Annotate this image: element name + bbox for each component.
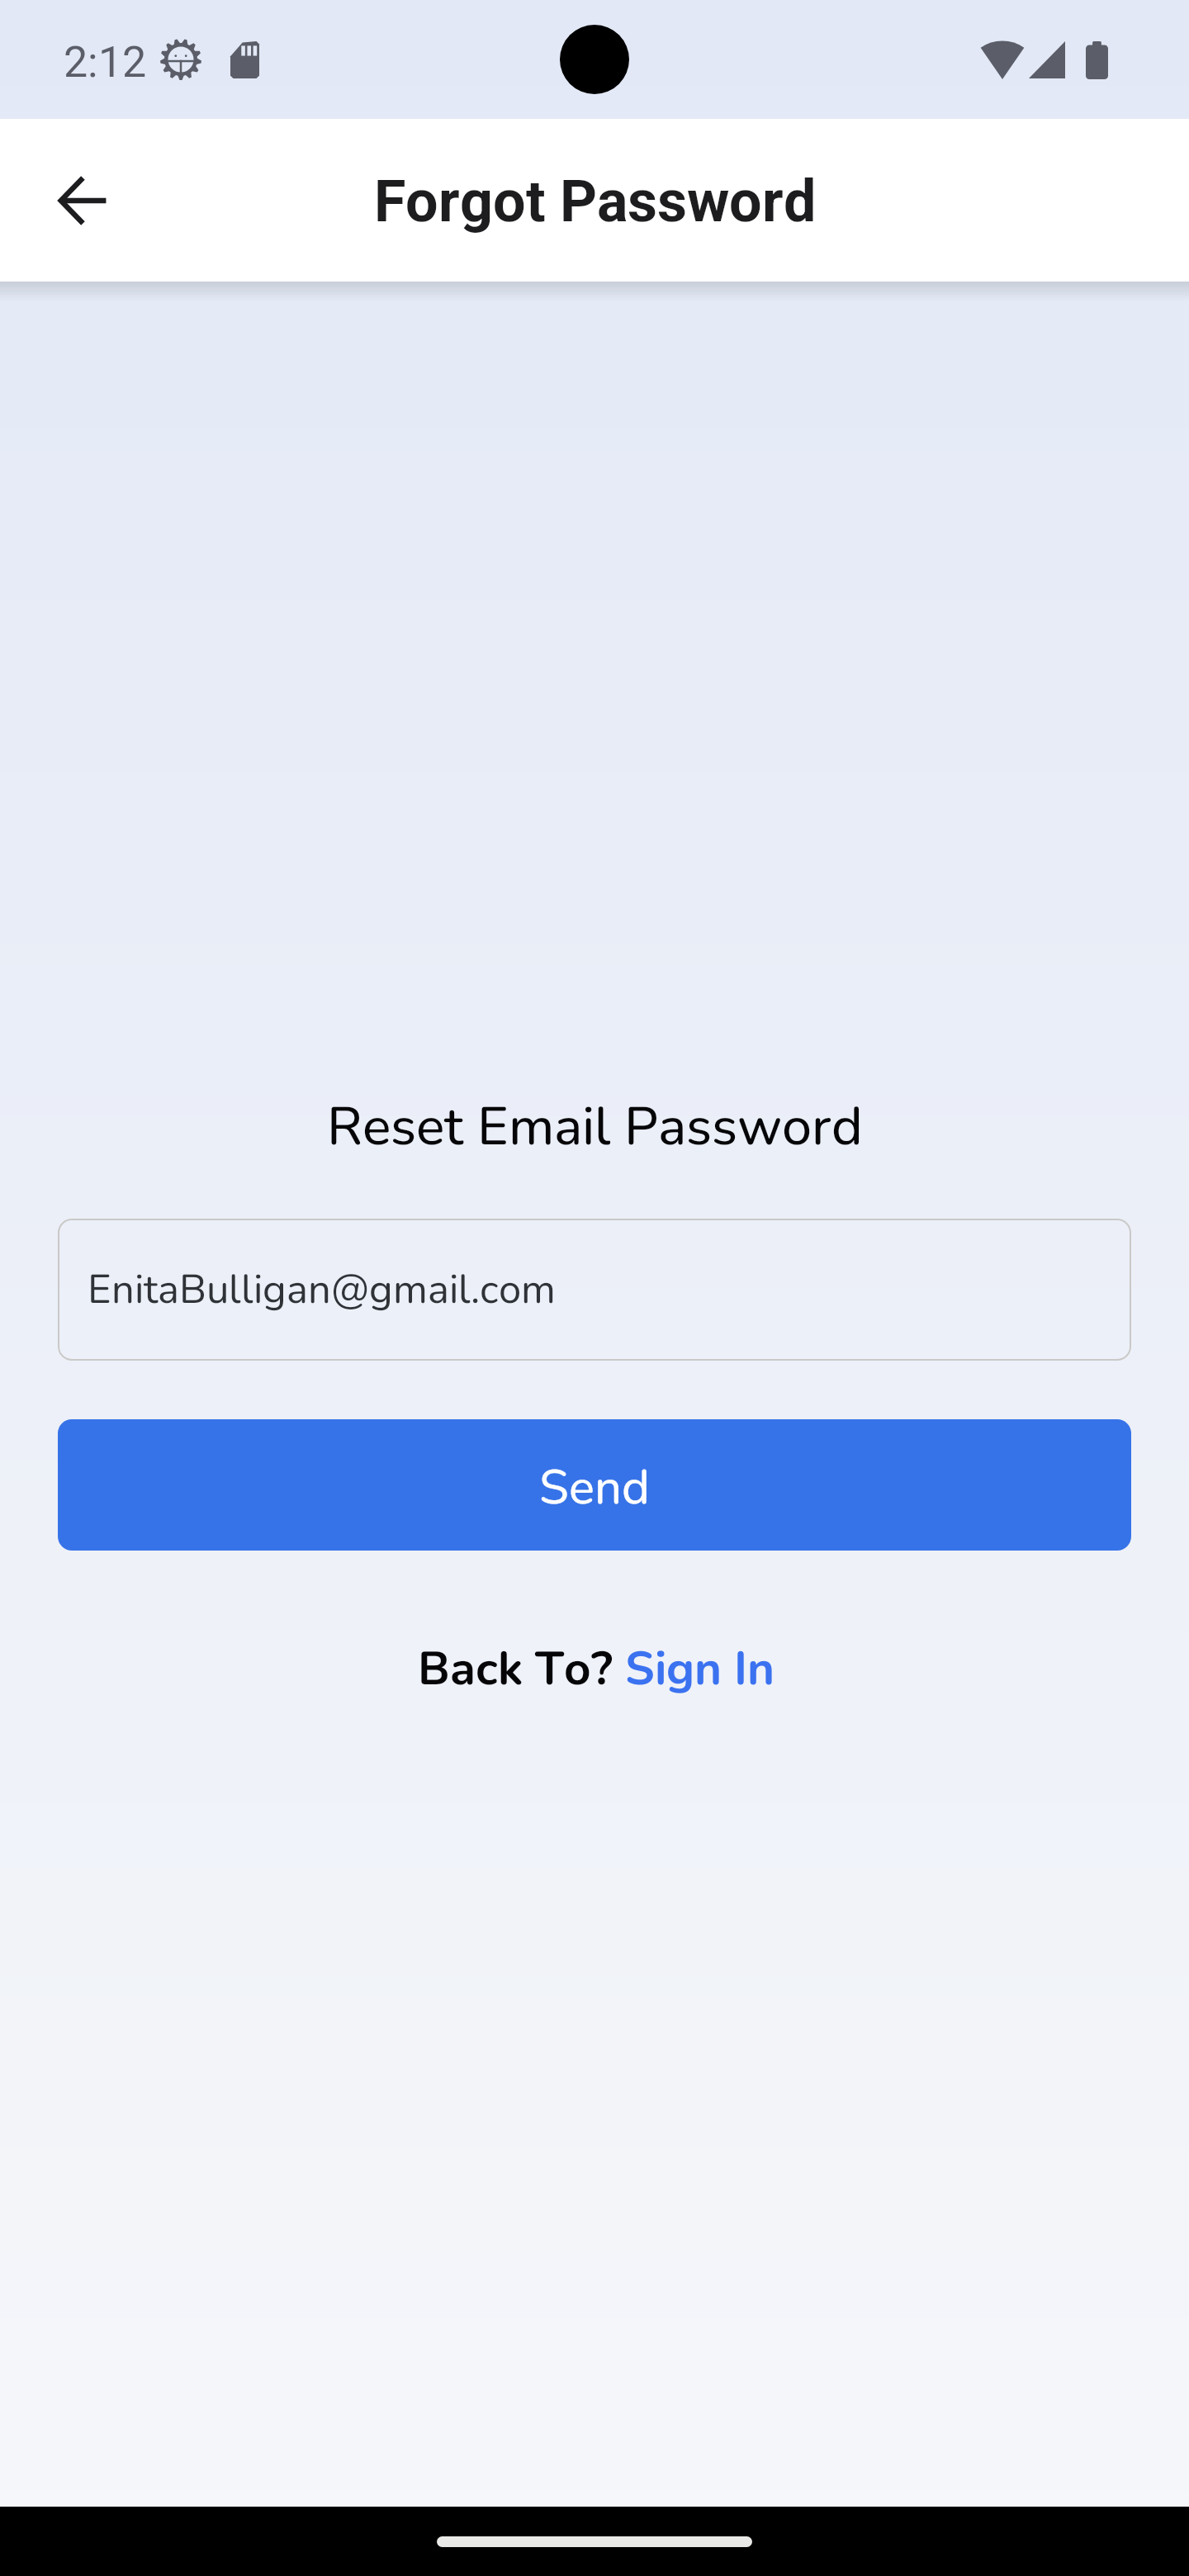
other: Reset Email Password (327, 1091, 863, 1163)
other: Forgot Password (374, 168, 816, 235)
button[interactable]: Sign In (625, 1637, 775, 1701)
other: 2:12 (64, 37, 146, 88)
button[interactable]: EnitaBulligan@gmail.com (58, 1219, 1131, 1361)
other: Send (539, 1455, 650, 1520)
button[interactable]: Send (58, 1419, 1131, 1551)
button[interactable]: Back (36, 154, 129, 247)
other: Back To? (418, 1637, 625, 1701)
other: EnitaBulligan@gmail.com (88, 1262, 556, 1318)
